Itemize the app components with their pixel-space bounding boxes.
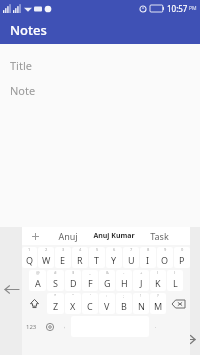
staticText: Anuj Kumar [93, 231, 135, 241]
button[interactable]: ! [133, 293, 149, 314]
button[interactable]: ) [167, 270, 183, 291]
button[interactable]: 3 [55, 247, 71, 268]
button[interactable]: $ [65, 270, 81, 291]
button[interactable]: ( [150, 270, 166, 291]
staticText: Z [53, 300, 59, 312]
button[interactable]: 2 [38, 247, 54, 268]
button[interactable]: 5 [89, 247, 105, 268]
staticText: Q [26, 254, 34, 266]
button[interactable]: 6 [106, 247, 122, 268]
button[interactable]: @ [29, 270, 46, 291]
button[interactable]: Anuj [48, 227, 88, 245]
button[interactable]: Back [2, 281, 22, 297]
button[interactable]: - [116, 270, 132, 291]
button[interactable]: 4 [72, 247, 88, 268]
button[interactable]: + [133, 270, 149, 291]
staticText: 0 [181, 247, 184, 252]
staticText: U [128, 254, 135, 266]
staticText: * [54, 293, 57, 298]
button[interactable]: ; [116, 293, 132, 314]
staticText: Y [111, 254, 117, 266]
staticText: D [70, 277, 77, 289]
staticText: 5 [96, 247, 99, 252]
staticText: V [104, 300, 110, 312]
staticText: F [88, 277, 93, 289]
staticText: 4 [79, 247, 82, 252]
staticText: 8 [147, 247, 150, 252]
staticText: ( [157, 270, 159, 275]
button[interactable]: 9 [157, 247, 173, 268]
staticText: - [123, 270, 125, 275]
staticText: & [106, 270, 109, 275]
button[interactable]: Emoji [41, 316, 58, 337]
button[interactable]: Title [0, 54, 200, 76]
staticText: PM [189, 5, 197, 12]
button[interactable]: " [65, 293, 81, 314]
staticText: 3 [62, 247, 65, 252]
button[interactable]: Next [178, 331, 198, 347]
button[interactable]: Task [139, 227, 180, 245]
staticText: X [70, 300, 76, 312]
button[interactable]: More suggestions [22, 227, 48, 245]
button[interactable]: _ [82, 270, 98, 291]
button[interactable]: Note [0, 79, 200, 101]
button[interactable]: 123 [22, 316, 40, 337]
staticText: K [155, 277, 161, 289]
button[interactable]: & [99, 270, 115, 291]
staticText: Task [150, 230, 169, 242]
staticText: 6 [113, 247, 116, 252]
staticText: ! [140, 293, 142, 298]
staticText: S [53, 277, 58, 289]
button[interactable]: * [47, 293, 64, 314]
staticText: ) [174, 270, 176, 275]
staticText: R [77, 254, 83, 266]
staticText: H [121, 277, 128, 289]
staticText: @ [36, 270, 40, 275]
staticText: $ [72, 270, 75, 275]
staticText: O [161, 254, 169, 266]
staticText: 7 [130, 247, 133, 252]
button[interactable]: Shift [22, 293, 46, 314]
staticText: ? [157, 293, 159, 298]
staticText: M [154, 300, 163, 312]
staticText: Note [10, 83, 36, 98]
staticText: 1 [28, 247, 31, 252]
staticText: E [60, 254, 66, 266]
staticText: N [138, 300, 145, 312]
button[interactable]: 7 [123, 247, 139, 268]
staticText: J [140, 277, 143, 289]
button[interactable]: ' [82, 293, 98, 314]
staticText: : [106, 293, 108, 298]
button[interactable]: 8 [140, 247, 156, 268]
staticText: G [104, 277, 111, 289]
staticText: L [173, 277, 178, 289]
staticText: 2 [45, 247, 48, 252]
staticText: Notes [10, 21, 47, 39]
staticText: . [155, 323, 157, 330]
button[interactable]: # [47, 270, 64, 291]
button[interactable]: : [99, 293, 115, 314]
staticText: # [54, 270, 57, 275]
staticText: P [179, 254, 185, 266]
staticText: I [146, 254, 150, 266]
button[interactable]: 0 [174, 247, 190, 268]
staticText: ; [123, 293, 125, 298]
staticText: Title [10, 58, 32, 73]
button[interactable]: Backspace [167, 293, 190, 314]
staticText: W [42, 254, 51, 266]
staticText: B [121, 300, 127, 312]
button[interactable]: ? [150, 293, 166, 314]
staticText: C [87, 300, 93, 312]
button[interactable]: 1 [22, 247, 37, 268]
staticText: 9 [164, 247, 167, 252]
staticText: + [140, 270, 143, 275]
staticText: _ [89, 270, 91, 275]
button[interactable]: Anuj Kumar [88, 227, 139, 245]
staticText: Anuj [58, 230, 78, 242]
staticText: " [72, 293, 74, 298]
staticText: 123 [26, 323, 37, 331]
staticText: ' [90, 293, 91, 298]
staticText: , [64, 323, 66, 330]
